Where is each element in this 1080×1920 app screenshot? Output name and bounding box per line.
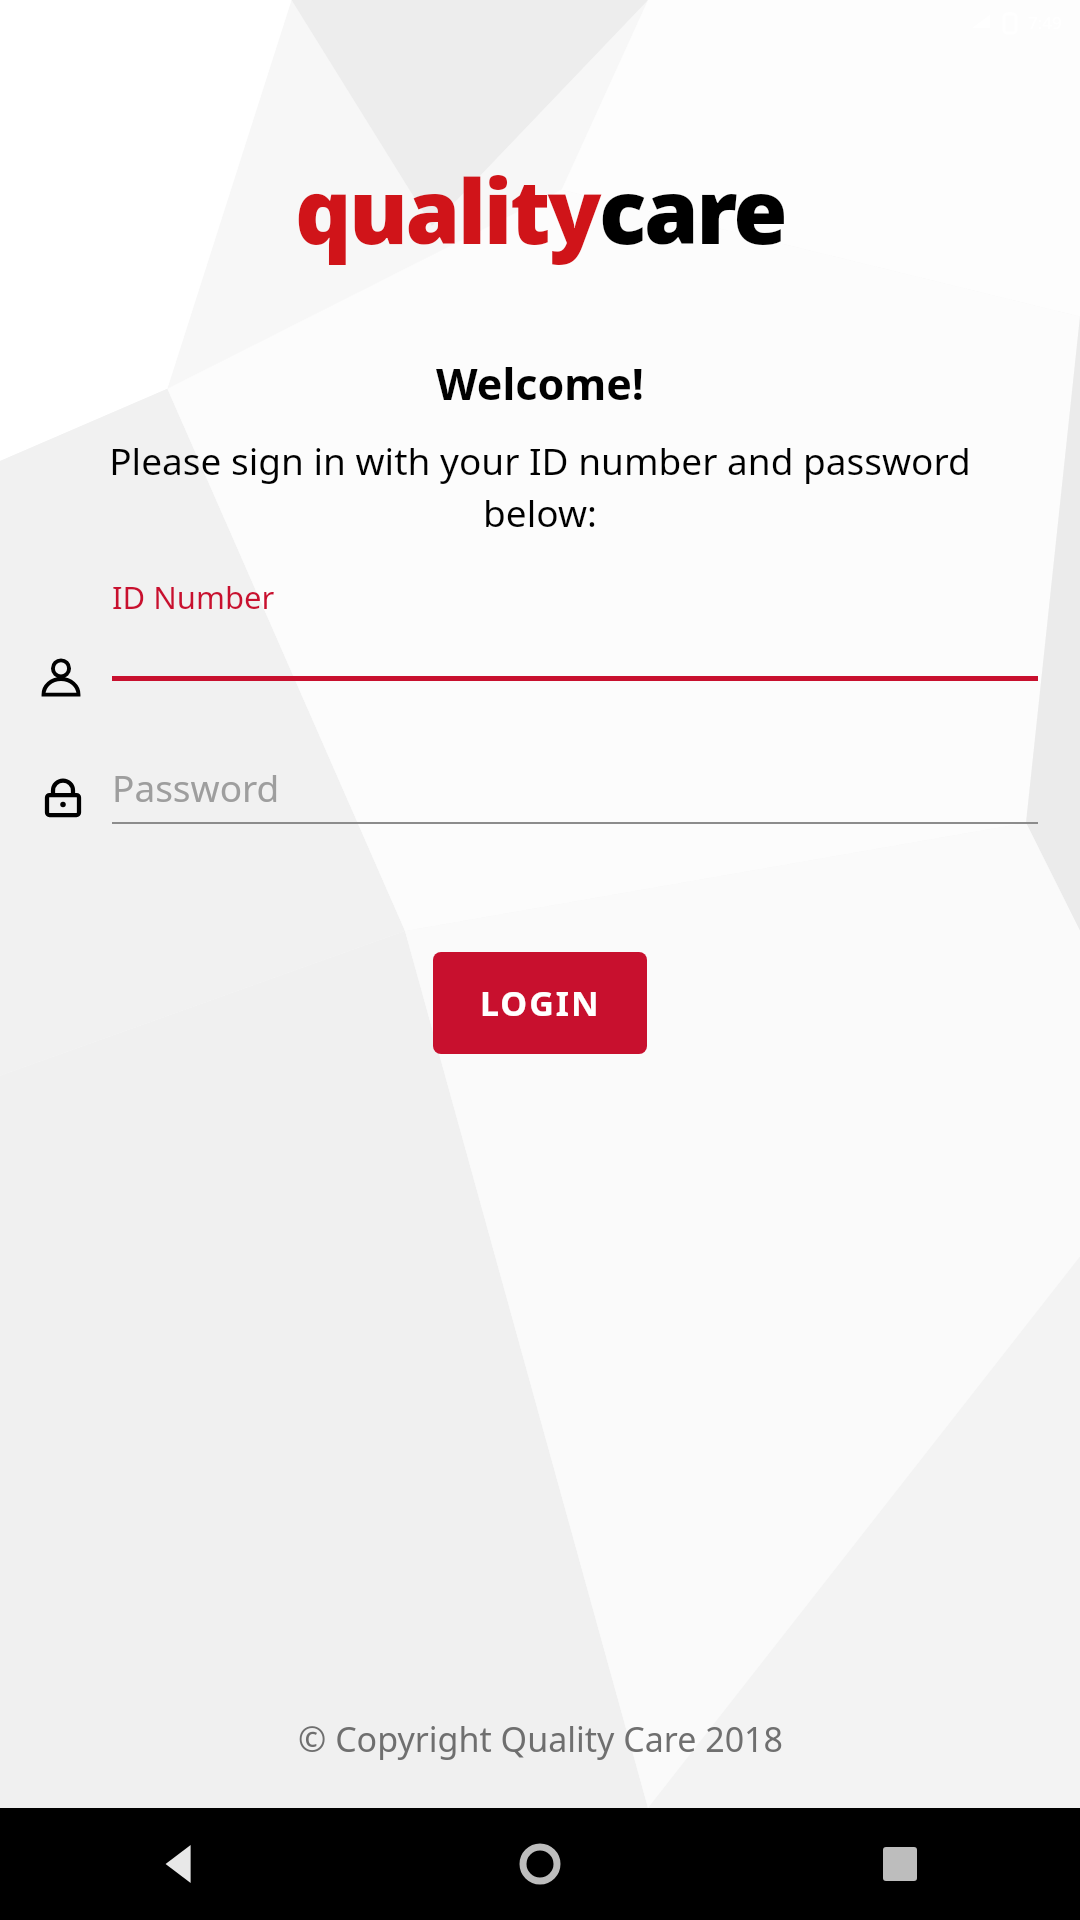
staticText: LOGIN (480, 980, 601, 1026)
staticText: © Copyright Quality Care 2018 (298, 1716, 783, 1762)
staticText: qualitycare (295, 150, 786, 270)
button[interactable]: Password (38, 754, 1038, 842)
staticText: Password (112, 762, 280, 812)
button[interactable]: Home (492, 1816, 588, 1912)
staticText: Please sign in with your ID number and p… (60, 435, 1020, 538)
button[interactable]: Recent apps (852, 1816, 948, 1912)
button[interactable]: Back (132, 1816, 228, 1912)
button[interactable]: LOGIN (433, 952, 647, 1054)
staticText: ID Number (112, 576, 275, 618)
button[interactable]: ID Number (38, 576, 1038, 702)
staticText: Welcome! (436, 354, 644, 413)
